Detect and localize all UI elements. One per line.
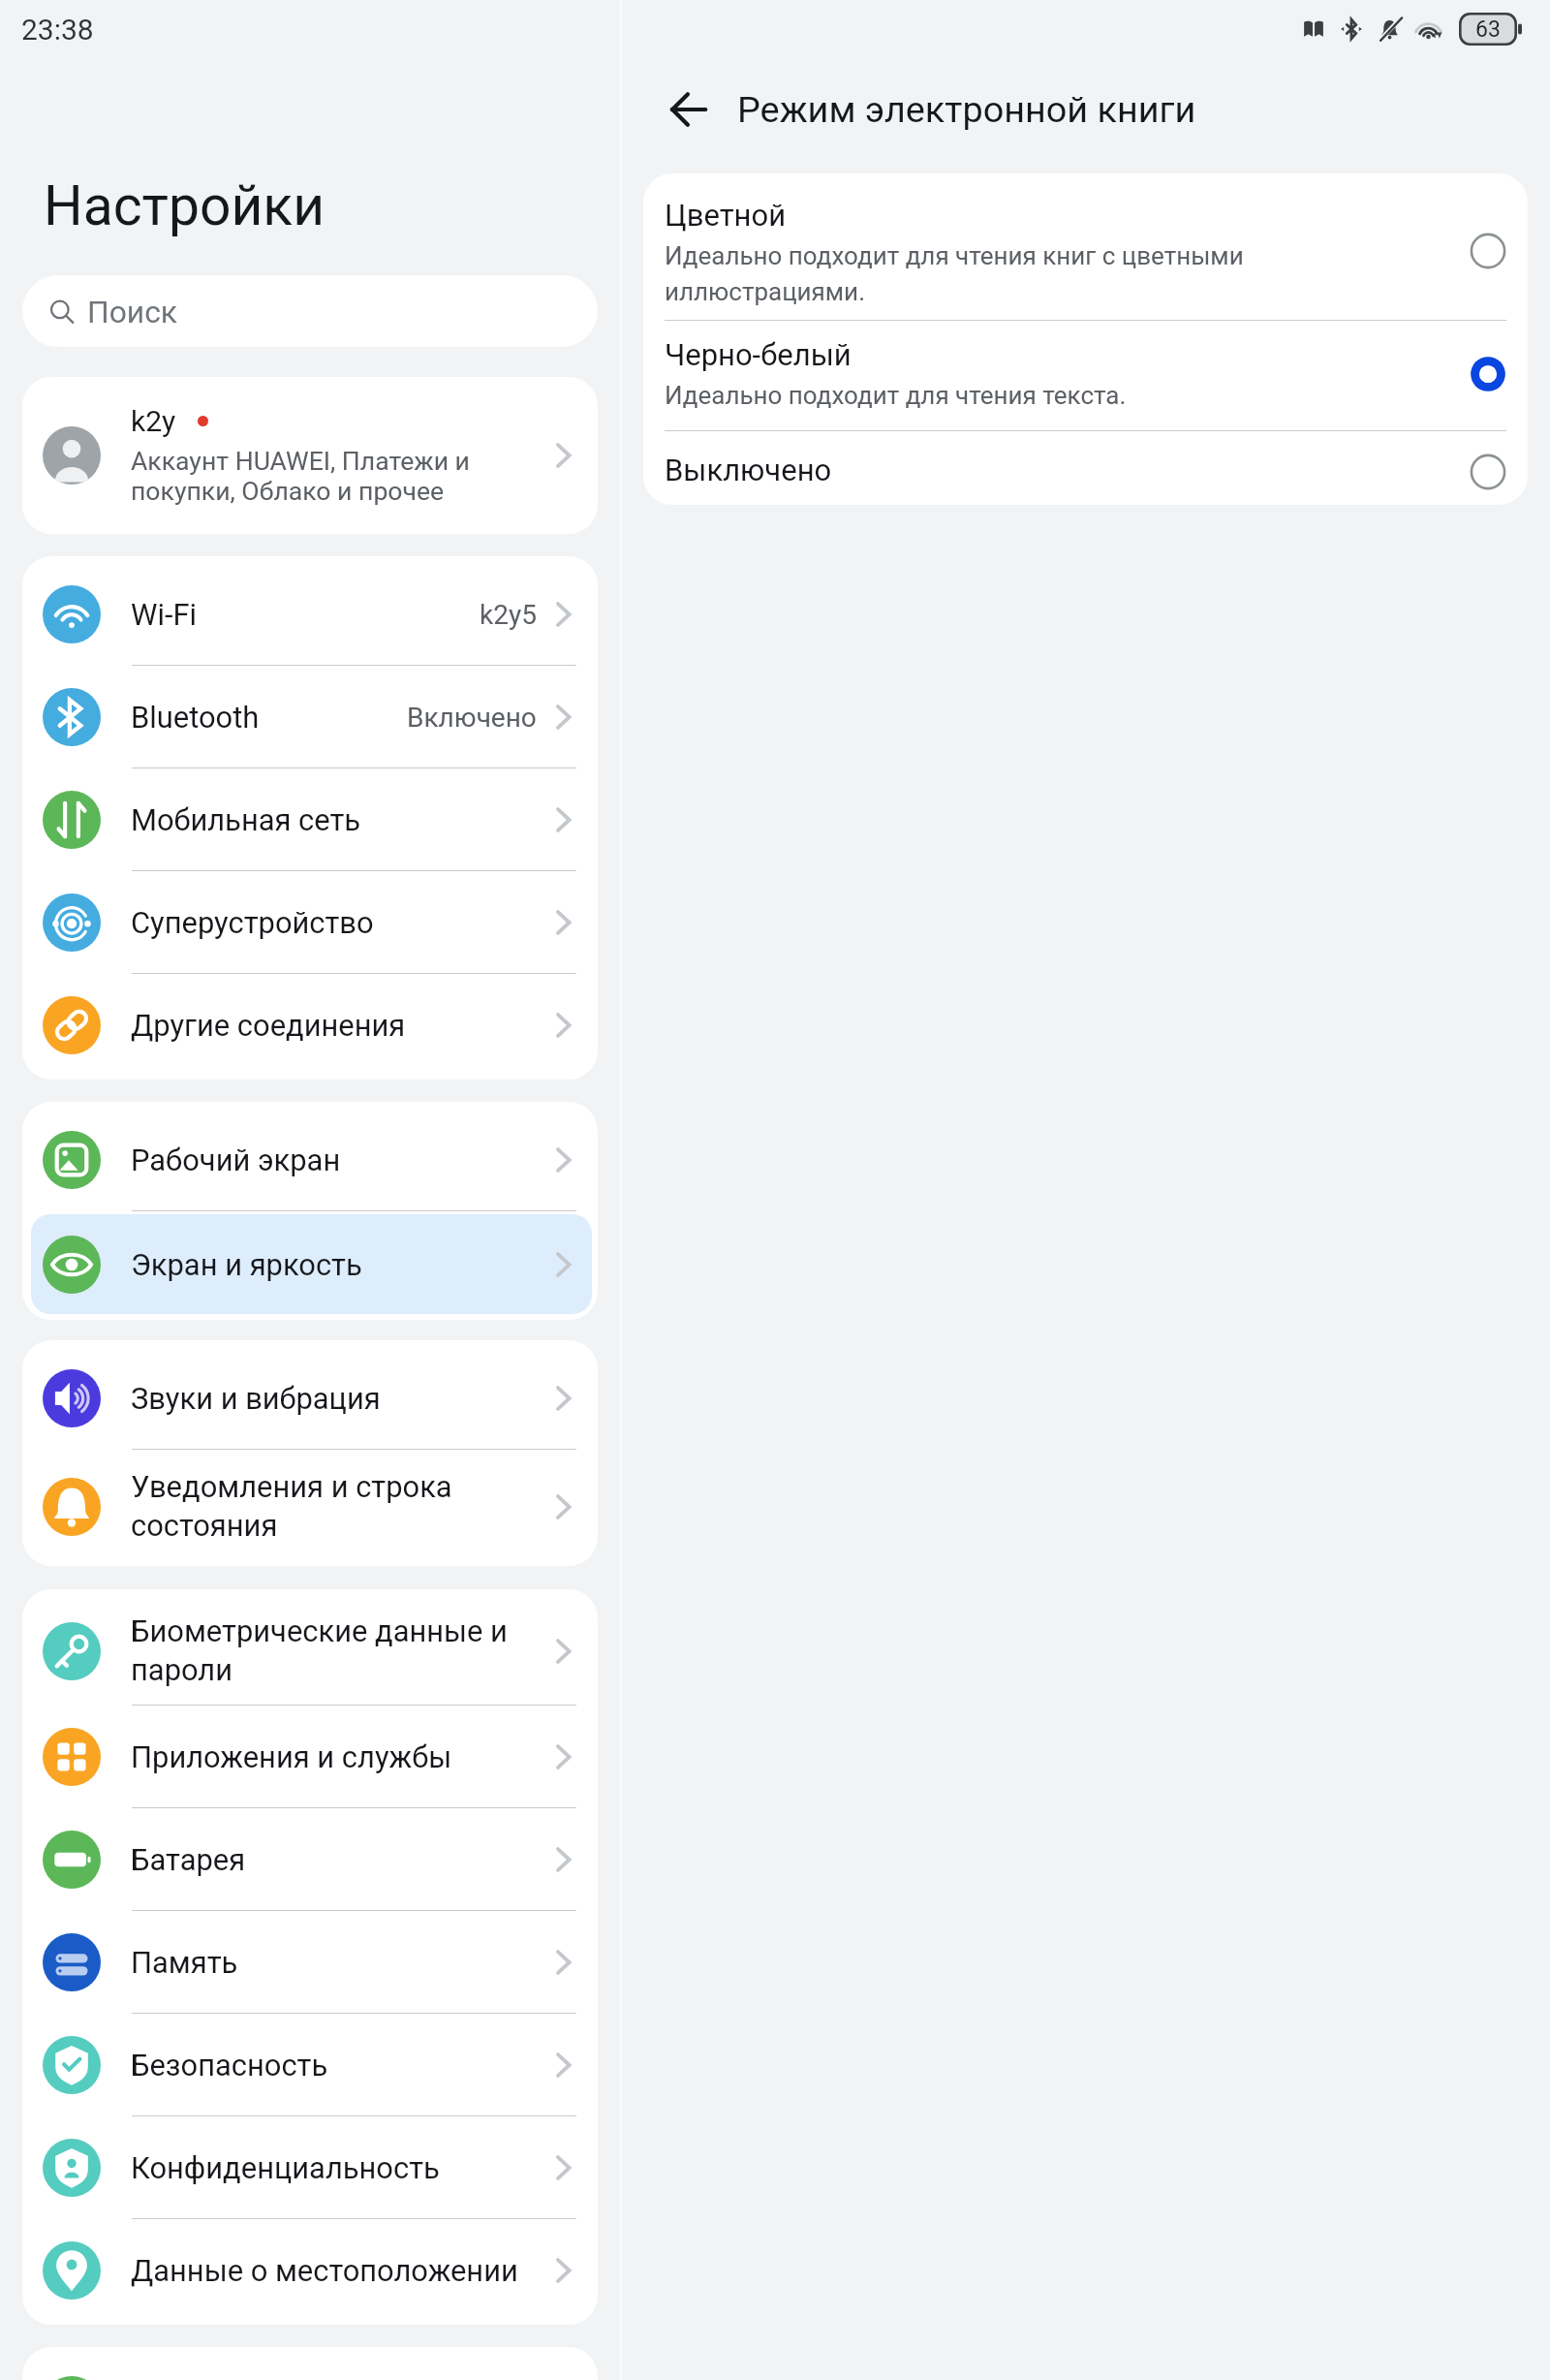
- staticText: Выключено: [665, 453, 832, 487]
- button[interactable]: Батарея: [22, 1808, 598, 1911]
- staticText: Батарея: [131, 1842, 549, 1877]
- staticText: Wi-Fi: [131, 597, 480, 632]
- button[interactable]: Мобильная сеть: [22, 768, 598, 871]
- button[interactable]: Выключено: [643, 431, 1528, 505]
- staticText: Экран и яркость: [131, 1247, 549, 1282]
- staticText: Память: [131, 1945, 549, 1980]
- button[interactable]: Безопасность: [22, 2014, 598, 2116]
- staticText: 63: [1475, 16, 1501, 43]
- staticText: Рабочий экран: [131, 1143, 549, 1177]
- staticText: Идеально подходит для чтения книг с цвет…: [665, 241, 1244, 306]
- staticText: k2y: [131, 404, 176, 438]
- staticText: Настройки: [44, 173, 325, 238]
- staticText: Данные о местоположении: [131, 2253, 549, 2288]
- staticText: Безопасность: [131, 2048, 549, 2082]
- button[interactable]: Биометрические данные и пароли: [22, 1596, 598, 1706]
- staticText: Bluetooth: [131, 700, 407, 735]
- button[interactable]: Поиск: [22, 275, 598, 347]
- button[interactable]: Уведомления и строка состояния: [22, 1450, 598, 1563]
- button[interactable]: Звуки и вибрация: [22, 1347, 598, 1450]
- button[interactable]: Wi-Fi: [22, 563, 598, 666]
- staticText: Суперустройство: [131, 905, 549, 940]
- button[interactable]: Черно-белый: [643, 321, 1528, 431]
- button[interactable]: k2y: [22, 377, 598, 534]
- button[interactable]: Конфиденциальность: [22, 2116, 598, 2219]
- staticText: Режим электронной книги: [737, 88, 1196, 131]
- staticText: Мобильная сеть: [131, 802, 549, 837]
- button[interactable]: Рабочий экран: [22, 1109, 598, 1211]
- staticText: Черно-белый: [665, 337, 852, 372]
- staticText: Конфиденциальность: [131, 2150, 549, 2185]
- staticText: 23:38: [21, 13, 94, 47]
- staticText: k2y5: [480, 599, 537, 631]
- button[interactable]: Назад: [657, 78, 721, 141]
- button[interactable]: Экран и яркость: [22, 1211, 598, 1317]
- button[interactable]: Приложения и службы: [22, 1706, 598, 1808]
- button[interactable]: Данные о местоположении: [22, 2219, 598, 2322]
- staticText: Поиск: [87, 294, 177, 329]
- button[interactable]: Суперустройство: [22, 871, 598, 974]
- staticText: Звуки и вибрация: [131, 1381, 549, 1416]
- staticText: Включено: [407, 702, 537, 734]
- staticText: Биометрические данные и пароли: [131, 1613, 549, 1688]
- button[interactable]: Другие соединения: [22, 974, 598, 1077]
- button[interactable]: Цветной: [643, 173, 1528, 321]
- staticText: Идеально подходит для чтения текста.: [665, 381, 1127, 410]
- staticText: Цветной: [665, 198, 787, 233]
- staticText: Аккаунт HUAWEI, Платежи и покупки, Облак…: [131, 446, 470, 507]
- button[interactable]: Bluetooth: [22, 666, 598, 768]
- staticText: Приложения и службы: [131, 1739, 549, 1774]
- button[interactable]: Память: [22, 1911, 598, 2014]
- staticText: Уведомления и строка состояния: [131, 1469, 549, 1544]
- staticText: Другие соединения: [131, 1008, 549, 1043]
- button[interactable]: Специальные возможности: [22, 2354, 598, 2380]
